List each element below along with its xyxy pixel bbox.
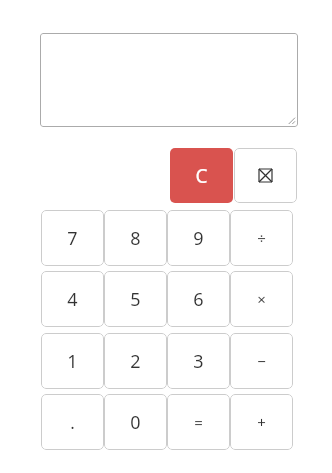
button[interactable]: ×	[230, 271, 293, 327]
staticText: 5	[130, 287, 141, 312]
button[interactable]: C	[170, 148, 233, 203]
staticText: −	[257, 351, 266, 371]
staticText: ÷	[257, 228, 266, 248]
staticText: 0	[130, 410, 141, 435]
staticText: 9	[193, 226, 204, 251]
button[interactable]: Backspace	[234, 148, 297, 203]
button[interactable]: 3	[167, 333, 230, 389]
button[interactable]: 6	[167, 271, 230, 327]
button[interactable]: 0	[104, 394, 167, 450]
button[interactable]: 9	[167, 210, 230, 266]
button[interactable]: −	[230, 333, 293, 389]
button[interactable]: .	[41, 394, 104, 450]
staticText: C	[195, 163, 208, 189]
button[interactable]: 7	[41, 210, 104, 266]
button[interactable]: 5	[104, 271, 167, 327]
staticText: 8	[130, 226, 141, 251]
button[interactable]: 2	[104, 333, 167, 389]
staticText: =	[194, 412, 203, 432]
button[interactable]: 1	[41, 333, 104, 389]
staticText: 7	[67, 226, 78, 251]
button[interactable]: +	[230, 394, 293, 450]
staticText: 2	[130, 349, 141, 374]
button[interactable]: 4	[41, 271, 104, 327]
staticText: 4	[67, 287, 78, 312]
staticText: ×	[257, 289, 266, 309]
button[interactable]	[40, 33, 298, 127]
staticText: 1	[67, 349, 78, 374]
staticText: +	[257, 412, 266, 432]
button[interactable]: =	[167, 394, 230, 450]
staticText: .	[70, 411, 75, 434]
staticText: 6	[193, 287, 204, 312]
staticText: 3	[193, 349, 204, 374]
button[interactable]: 8	[104, 210, 167, 266]
button[interactable]: ÷	[230, 210, 293, 266]
